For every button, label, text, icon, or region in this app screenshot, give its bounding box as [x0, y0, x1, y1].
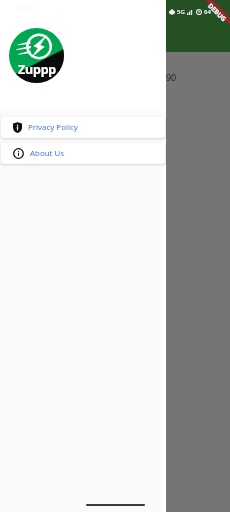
- staticText: DEBUG: [206, 1, 229, 24]
- staticText: 64: [204, 8, 211, 16]
- button[interactable]: About Us: [1, 143, 165, 164]
- staticText: 5G: [177, 8, 185, 16]
- staticText: About Us: [30, 148, 64, 159]
- other: Debug banner: [0, 0, 230, 512]
- staticText: Privacy Policy: [28, 122, 78, 133]
- button[interactable]: Privacy Policy: [1, 117, 165, 138]
- staticText: Rs. 1290: [141, 71, 177, 83]
- staticText: Zuppp: [18, 61, 57, 78]
